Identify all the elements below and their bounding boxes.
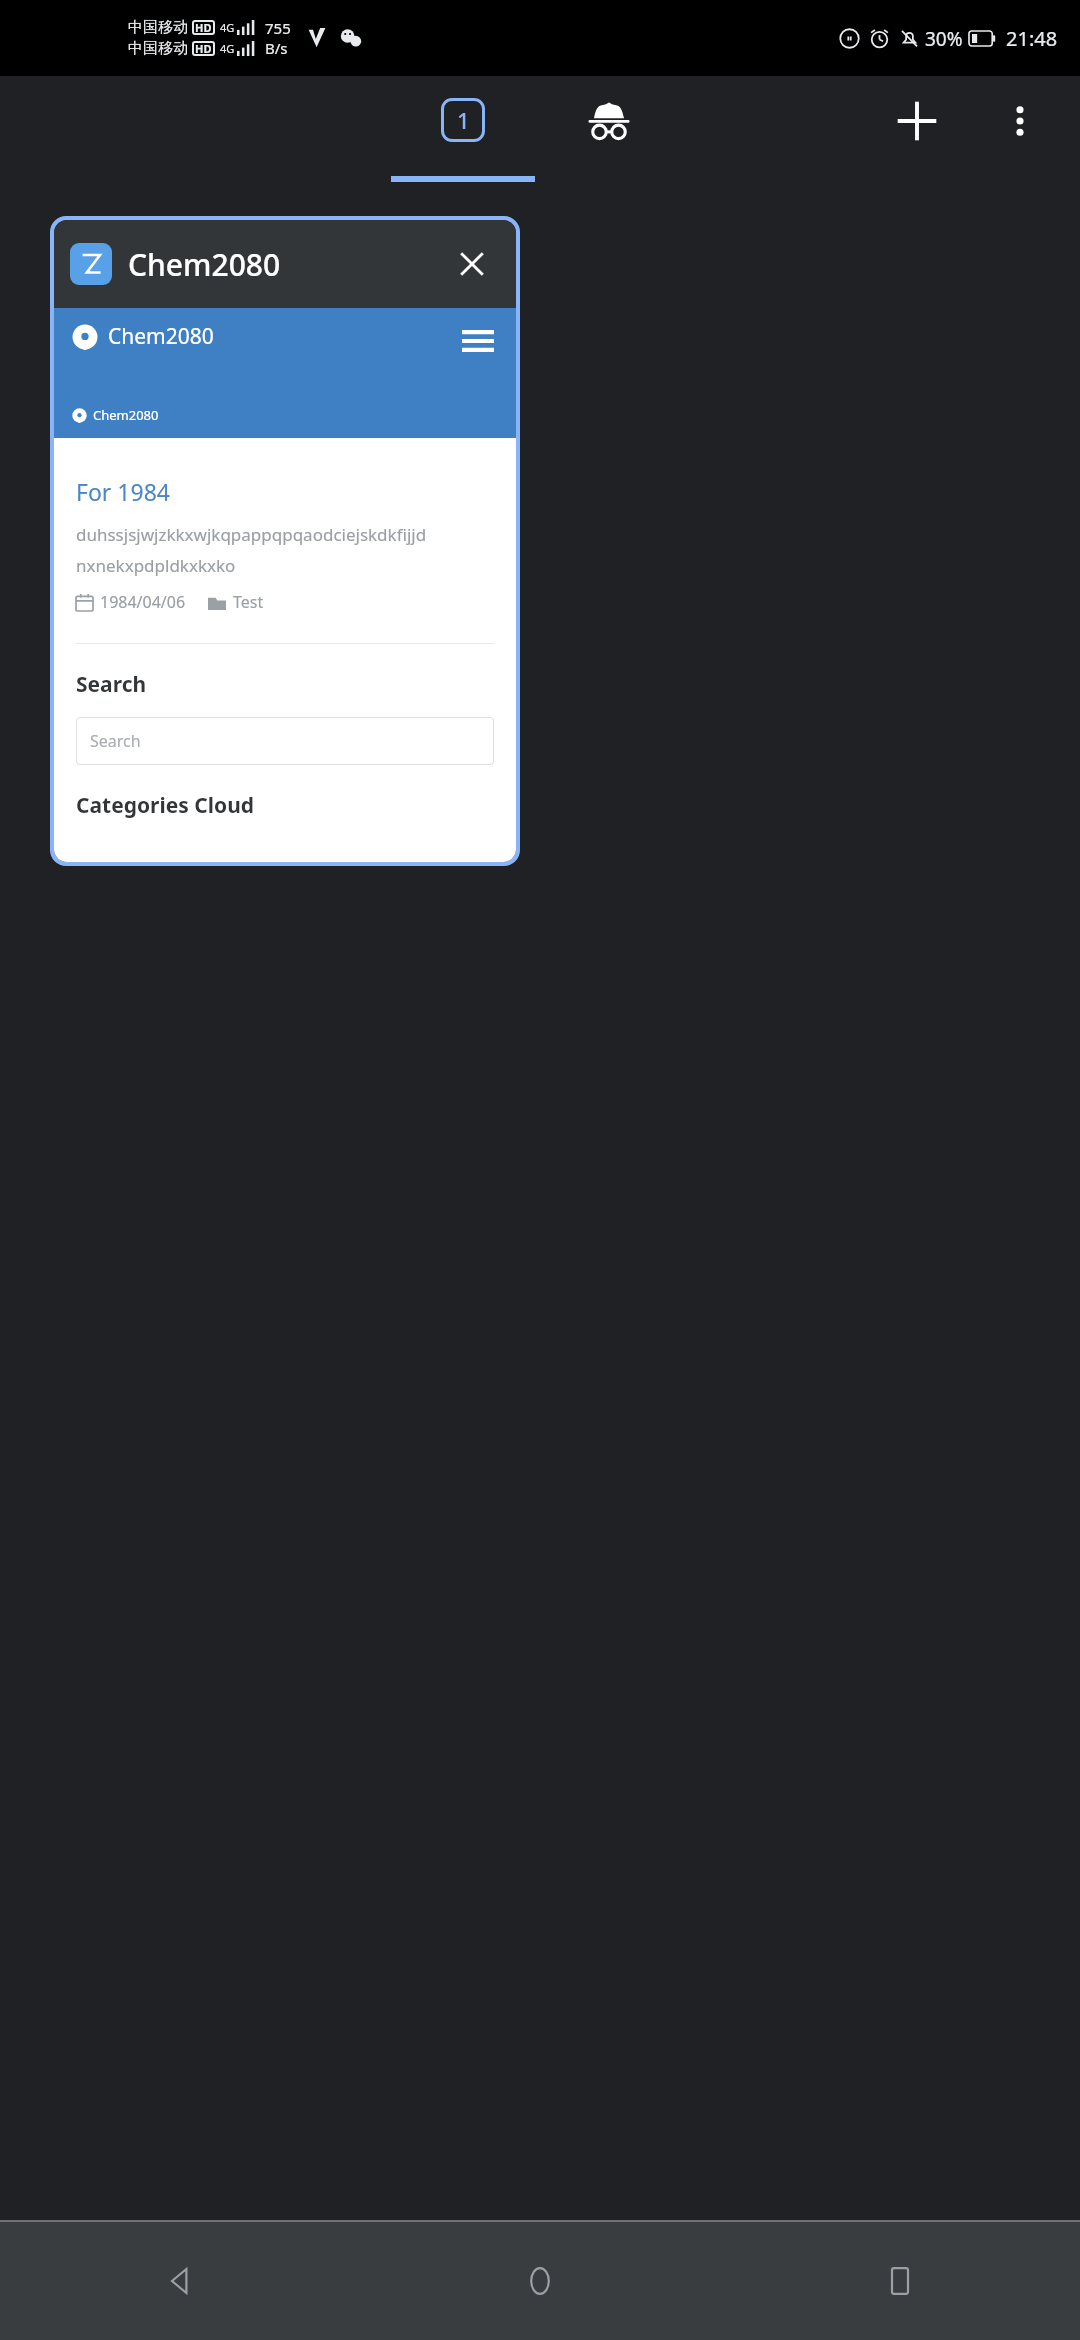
button[interactable]: More options (972, 76, 1068, 166)
staticText: For 1984 (76, 476, 170, 507)
button[interactable]: Open tabs, 1 tab (390, 76, 536, 182)
button[interactable]: Close tab Chem2080 (444, 236, 500, 292)
staticText: HD (195, 41, 212, 56)
button[interactable]: Chem2080 (50, 216, 520, 866)
staticText: 中国移动 (128, 18, 188, 37)
button[interactable]: Home (360, 2222, 720, 2340)
staticText: 4G (220, 20, 235, 35)
button[interactable]: Search (76, 717, 494, 765)
staticText: Chem2080 (93, 406, 159, 424)
staticText: Search (90, 730, 141, 752)
staticText: Chem2080 (108, 322, 214, 351)
staticText: 中国移动 (128, 39, 188, 58)
staticText: duhssjsjwjzkkxwjkqpappqpqaodciejskdkfijj… (76, 523, 427, 546)
staticText: HD (195, 20, 212, 35)
staticText: 4G (220, 41, 235, 56)
staticText: 30% (925, 26, 963, 52)
staticText: nxnekxpdpldkxkxko (76, 554, 236, 577)
staticText: 1 (457, 105, 470, 135)
staticText: 755 (265, 18, 291, 38)
staticText: Categories Cloud (76, 791, 255, 820)
staticText: Search (76, 670, 147, 699)
button[interactable]: Back (0, 2222, 360, 2340)
staticText: 21:48 (1006, 25, 1058, 52)
button[interactable]: New tab (862, 76, 972, 166)
staticText: B/s (265, 38, 288, 58)
button[interactable]: Incognito tabs (536, 76, 682, 142)
button[interactable]: Recent apps (720, 2222, 1080, 2340)
staticText: Test (233, 591, 264, 613)
staticText: Chem2080 (128, 244, 444, 285)
staticText: 1984/04/06 (100, 591, 186, 613)
